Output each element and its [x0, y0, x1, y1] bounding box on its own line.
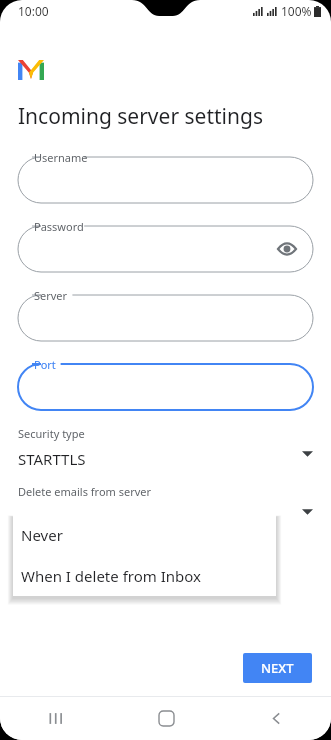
button[interactable]: When I delete from Inbox [13, 555, 276, 596]
button[interactable]: Recent apps [0, 696, 111, 740]
staticText: NEXT [261, 659, 294, 677]
staticText: STARTTLS [18, 449, 86, 469]
staticText: 10:00 [18, 3, 49, 19]
button[interactable]: Username [18, 148, 313, 203]
button[interactable]: Server [18, 286, 313, 341]
button[interactable]: Back [221, 696, 331, 740]
staticText: Port [34, 357, 56, 372]
button[interactable]: Port [18, 355, 313, 410]
staticText: Username [34, 150, 88, 165]
staticText: Delete emails from server [18, 484, 152, 499]
staticText: Never [21, 525, 63, 545]
button[interactable]: Home [111, 696, 221, 740]
staticText: Password [34, 219, 84, 234]
button[interactable]: Security type [18, 426, 313, 472]
staticText: Server [34, 288, 68, 303]
staticText: Security type [18, 426, 85, 441]
button[interactable]: Delete emails from server [18, 484, 313, 530]
staticText: 100% [281, 3, 312, 19]
staticText: When I delete from Inbox [21, 566, 201, 586]
button[interactable]: NEXT [243, 653, 312, 683]
button[interactable]: Show password [273, 235, 301, 263]
staticText: Incoming server settings [18, 102, 263, 131]
button[interactable]: Never [13, 515, 276, 555]
button[interactable]: Password [18, 217, 313, 272]
